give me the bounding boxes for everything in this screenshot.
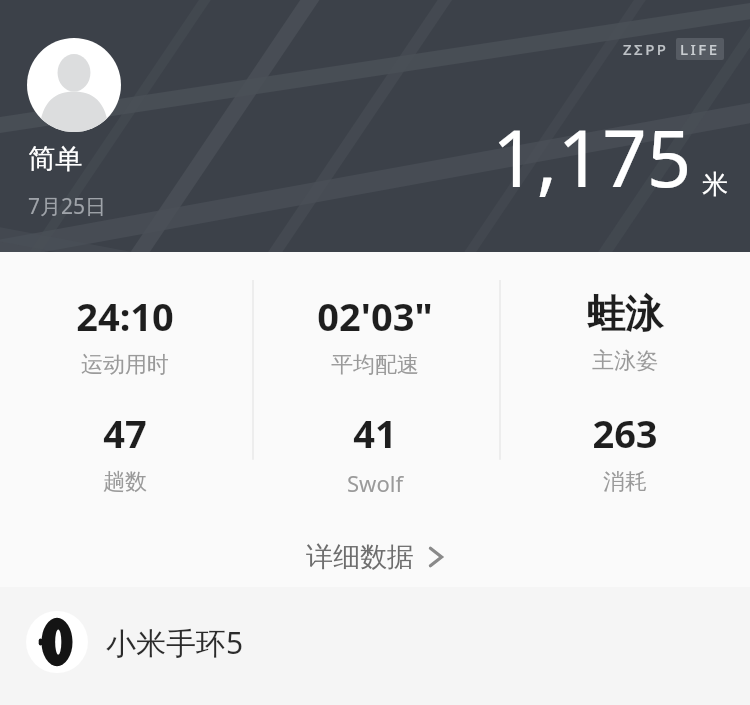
staticText: 24:10	[76, 290, 174, 342]
staticText: 平均配速	[331, 351, 419, 379]
staticText: 详细数据	[306, 540, 414, 574]
staticText: ZΣPP	[623, 39, 669, 59]
staticText: 运动用时	[81, 351, 169, 379]
button[interactable]: 02'03"	[250, 290, 500, 379]
staticText: Swolf	[347, 468, 403, 498]
staticText: 小米手环5	[106, 622, 244, 663]
button[interactable]: 详细数据	[292, 534, 458, 580]
staticText: 蛙泳	[587, 290, 663, 338]
staticText: 消耗	[603, 468, 647, 496]
staticText: 7月25日	[28, 192, 107, 221]
staticText: 1,175	[492, 104, 692, 210]
button[interactable]: 蛙泳	[500, 290, 750, 375]
staticText: 02'03"	[317, 290, 433, 342]
staticText: LIFE	[680, 39, 720, 59]
button[interactable]: 41	[250, 407, 500, 498]
staticText: 主泳姿	[592, 347, 658, 375]
staticText: 简单	[28, 142, 82, 176]
button[interactable]: 263	[500, 407, 750, 496]
button[interactable]: Profile avatar	[27, 38, 121, 132]
button[interactable]: 24:10	[0, 290, 250, 379]
staticText: 263	[592, 407, 658, 459]
staticText: 趟数	[103, 468, 147, 496]
staticText: 47	[103, 407, 147, 459]
button[interactable]: 47	[0, 407, 250, 496]
button[interactable]: 小米手环5	[0, 601, 750, 683]
staticText: 41	[353, 407, 397, 459]
staticText: 米	[702, 168, 728, 201]
